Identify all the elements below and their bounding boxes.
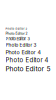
staticText: Photo Editor 4 <box>5 56 48 64</box>
staticText: Photo Editor 2 <box>5 31 27 35</box>
staticText: Photo Editor 3 <box>5 42 36 48</box>
staticText: Photo Editor 2 <box>5 27 27 30</box>
staticText: Photo Editor 5 <box>5 65 50 73</box>
staticText: Photo Editor 4 <box>5 49 40 55</box>
staticText: Photo Editor 3 <box>5 36 29 41</box>
